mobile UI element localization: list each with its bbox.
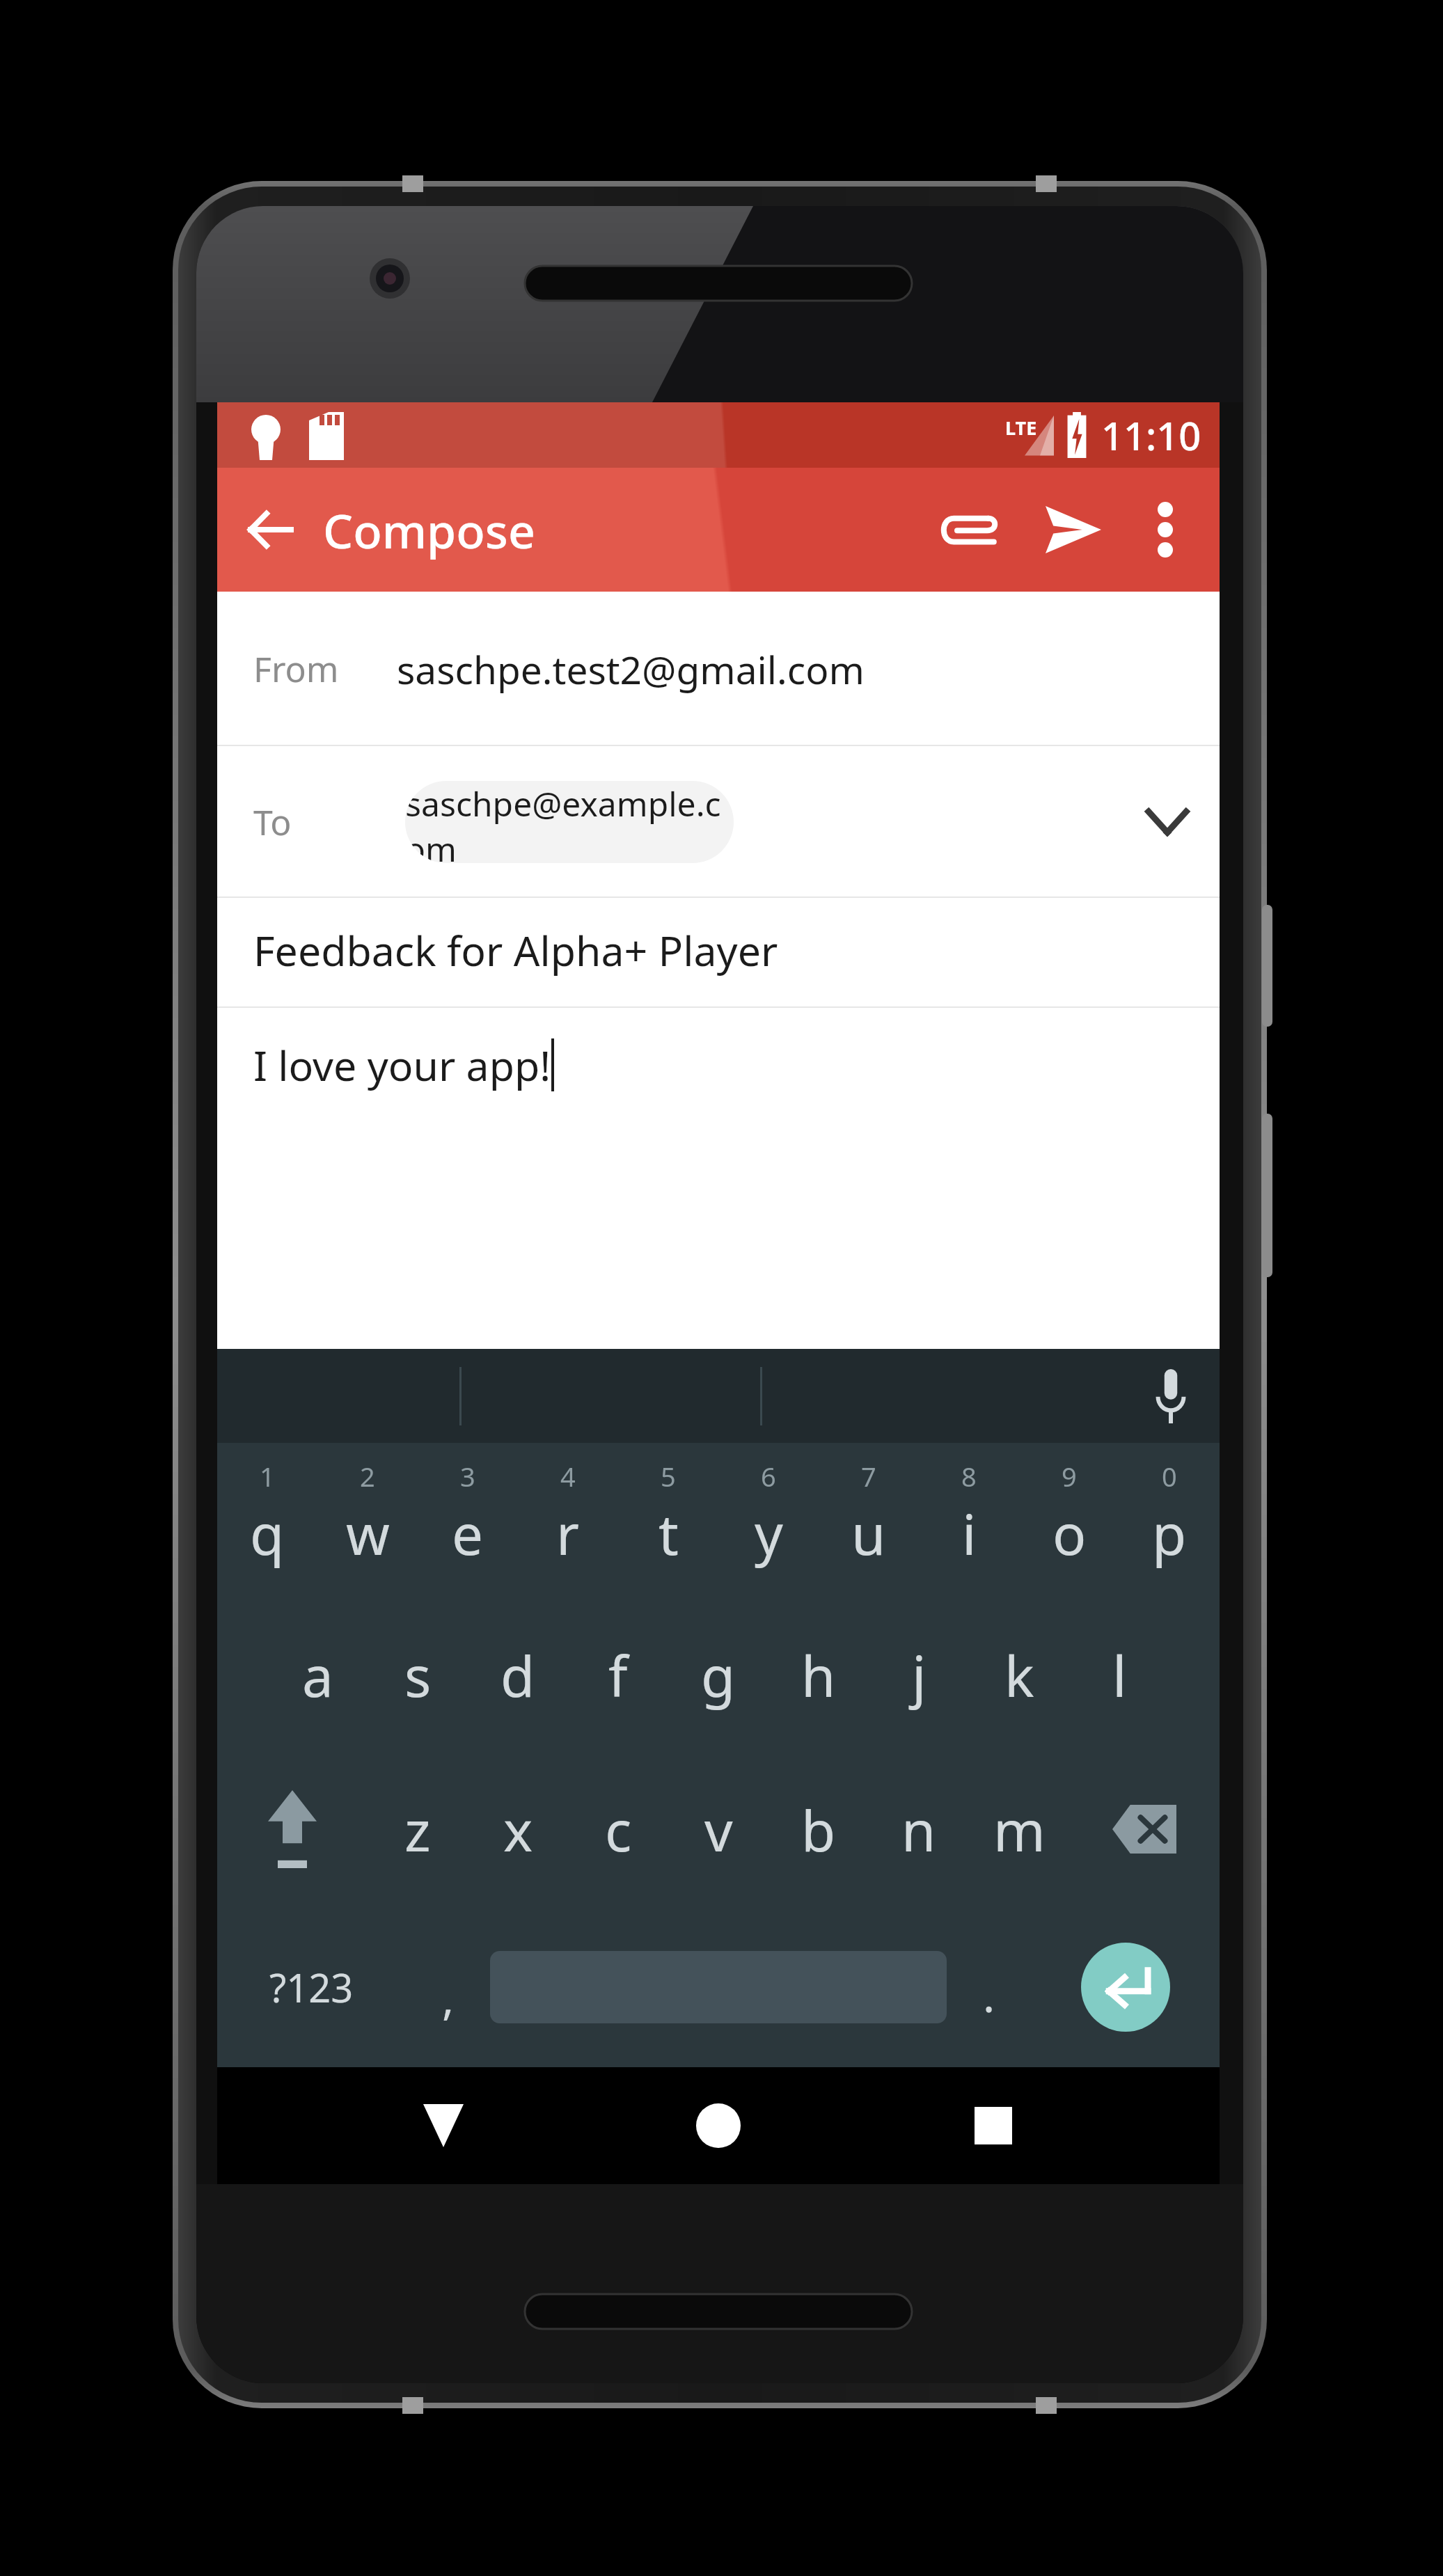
- button[interactable]: v: [668, 1752, 768, 1906]
- staticText: l: [1112, 1637, 1127, 1713]
- button[interactable]: c: [568, 1752, 668, 1906]
- staticText: 4: [560, 1458, 576, 1494]
- button[interactable]: 0: [1119, 1443, 1220, 1597]
- button[interactable]: Back: [391, 2067, 496, 2184]
- button[interactable]: b: [768, 1752, 869, 1906]
- button[interactable]: I love your app!: [217, 1008, 1220, 1349]
- staticText: g: [701, 1637, 736, 1713]
- button[interactable]: j: [869, 1597, 969, 1752]
- staticText: s: [404, 1637, 432, 1713]
- staticText: k: [1004, 1637, 1034, 1713]
- staticText: j: [912, 1637, 926, 1713]
- button[interactable]: 1: [217, 1443, 317, 1597]
- staticText: b: [801, 1792, 836, 1867]
- staticText: a: [302, 1637, 333, 1713]
- staticText: f: [608, 1637, 628, 1713]
- staticText: ,: [442, 1968, 455, 2028]
- staticText: ?123: [269, 1961, 354, 2014]
- button[interactable]: n: [869, 1752, 969, 1906]
- staticText: d: [500, 1637, 535, 1713]
- staticText: 11:10: [1101, 409, 1201, 461]
- button[interactable]: 2: [317, 1443, 418, 1597]
- button[interactable]: ?123: [217, 1906, 406, 2067]
- staticText: 2: [360, 1458, 375, 1494]
- button[interactable]: 8: [919, 1443, 1019, 1597]
- button[interactable]: From: [217, 592, 1220, 746]
- staticText: 1: [260, 1458, 275, 1494]
- staticText: LTE: [1005, 415, 1037, 441]
- button[interactable]: Voice input: [1122, 1349, 1220, 1443]
- staticText: 9: [1062, 1458, 1077, 1494]
- button[interactable]: Attach file: [916, 468, 1020, 592]
- staticText: e: [452, 1495, 484, 1571]
- staticText: t: [659, 1495, 679, 1571]
- staticText: 3: [460, 1458, 475, 1494]
- button[interactable]: m: [969, 1752, 1069, 1906]
- staticText: saschpe.test2@gmail.com: [397, 643, 865, 695]
- staticText: m: [993, 1792, 1046, 1867]
- button[interactable]: Enter: [1081, 1943, 1170, 2032]
- button[interactable]: Feedback for Alpha+ Player: [217, 898, 1220, 1008]
- staticText: 6: [761, 1458, 776, 1494]
- button[interactable]: a: [267, 1597, 368, 1752]
- staticText: i: [962, 1495, 977, 1571]
- staticText: .: [983, 1965, 995, 2025]
- staticText: n: [901, 1792, 936, 1867]
- staticText: o: [1052, 1495, 1087, 1571]
- staticText: 5: [661, 1458, 676, 1494]
- staticText: r: [556, 1495, 580, 1571]
- staticText: I love your app!: [253, 1037, 551, 1093]
- staticText: c: [605, 1792, 632, 1867]
- button[interactable]: s: [368, 1597, 468, 1752]
- button[interactable]: l: [1069, 1597, 1169, 1752]
- staticText: 8: [961, 1458, 977, 1494]
- staticText: saschpe@example.com: [405, 781, 734, 863]
- button[interactable]: Shift: [217, 1752, 368, 1906]
- staticText: x: [503, 1792, 533, 1867]
- button[interactable]: g: [668, 1597, 768, 1752]
- button[interactable]: z: [368, 1752, 468, 1906]
- button[interactable]: k: [969, 1597, 1069, 1752]
- button[interactable]: To: [217, 746, 1220, 898]
- staticText: From: [253, 645, 339, 693]
- button[interactable]: 7: [819, 1443, 919, 1597]
- button[interactable]: x: [468, 1752, 568, 1906]
- button[interactable]: 5: [618, 1443, 718, 1597]
- button[interactable]: .: [947, 1906, 1031, 2067]
- button[interactable]: h: [768, 1597, 869, 1752]
- staticText: p: [1152, 1495, 1187, 1571]
- staticText: 0: [1162, 1458, 1177, 1494]
- button[interactable]: Backspace: [1069, 1752, 1220, 1906]
- button[interactable]: 4: [518, 1443, 618, 1597]
- button[interactable]: Navigate up: [217, 468, 323, 592]
- staticText: z: [404, 1792, 431, 1867]
- staticText: y: [755, 1495, 783, 1571]
- button[interactable]: 3: [418, 1443, 518, 1597]
- staticText: h: [801, 1637, 836, 1713]
- staticText: Compose: [323, 498, 535, 562]
- button[interactable]: f: [568, 1597, 668, 1752]
- staticText: q: [250, 1495, 285, 1571]
- button[interactable]: Recent apps: [941, 2067, 1046, 2184]
- staticText: u: [851, 1495, 886, 1571]
- button[interactable]: Send: [1020, 468, 1126, 592]
- button[interactable]: 9: [1019, 1443, 1119, 1597]
- button[interactable]: More options: [1126, 468, 1204, 592]
- staticText: v: [704, 1792, 733, 1867]
- staticText: w: [346, 1495, 390, 1571]
- staticText: To: [253, 798, 292, 846]
- button[interactable]: d: [468, 1597, 568, 1752]
- button[interactable]: 6: [718, 1443, 819, 1597]
- button[interactable]: ,: [406, 1906, 490, 2067]
- button[interactable]: Home: [666, 2067, 771, 2184]
- staticText: Feedback for Alpha+ Player: [253, 922, 778, 978]
- button[interactable]: Show Cc and Bcc: [1115, 770, 1220, 874]
- button[interactable]: saschpe@example.com: [405, 781, 734, 863]
- staticText: 7: [861, 1458, 876, 1494]
